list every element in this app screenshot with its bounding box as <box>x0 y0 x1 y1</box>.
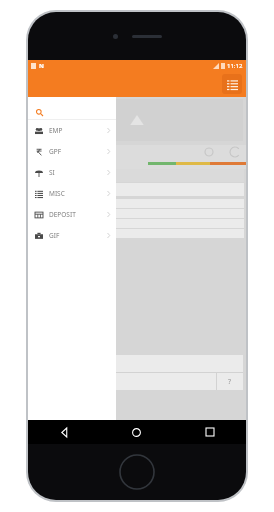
staticText: SI <box>49 168 55 177</box>
button[interactable]: Chart <box>30 169 244 182</box>
button[interactable]: GPF <box>28 141 116 162</box>
staticText: Chart <box>32 185 49 194</box>
staticText: MISC <box>49 189 65 198</box>
button[interactable]: Home <box>100 420 173 444</box>
button[interactable]: GIF <box>28 225 116 246</box>
button[interactable]: ? <box>217 373 243 390</box>
button[interactable]: MISC <box>28 183 116 204</box>
button[interactable]: EMP <box>28 120 116 141</box>
button[interactable]: Chart <box>30 183 244 196</box>
button[interactable]: SI <box>28 162 116 183</box>
button[interactable]: Recents <box>173 420 246 444</box>
staticText: GPF <box>49 147 62 156</box>
button[interactable]: DEPOSIT <box>28 204 116 225</box>
staticText: 11:12 <box>227 62 243 70</box>
staticText: ? <box>228 377 232 387</box>
button[interactable]: Menu <box>222 74 242 94</box>
button[interactable]: Back <box>28 420 100 444</box>
button[interactable]: SEARCH <box>31 373 216 390</box>
staticText: EMP <box>49 126 63 135</box>
staticText: N <box>39 62 44 70</box>
staticText: Chart <box>32 171 49 180</box>
staticText: DEPOSIT <box>49 210 76 219</box>
staticText: GIF <box>49 231 60 240</box>
button[interactable]: Close drawer <box>116 97 246 420</box>
